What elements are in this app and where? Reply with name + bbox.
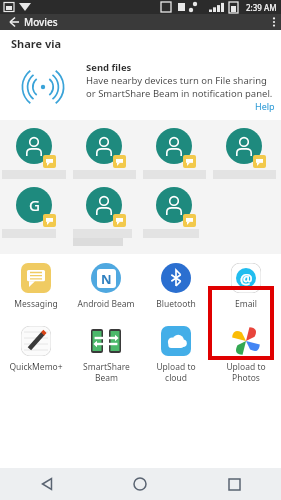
button[interactable]: Upload to cloud <box>141 322 211 385</box>
button[interactable]: Upload to Photos <box>211 322 281 385</box>
staticText: Email <box>235 298 257 310</box>
button[interactable]: Back <box>0 468 93 500</box>
staticText: Bluetooth <box>156 298 196 310</box>
staticText: Upload to cloud <box>156 361 196 383</box>
button[interactable]: G <box>0 183 71 238</box>
staticText: QuickMemo+ <box>9 361 63 373</box>
button[interactable] <box>141 183 211 238</box>
button[interactable]: Home <box>93 468 187 500</box>
button[interactable]: Messaging <box>0 259 71 312</box>
button[interactable]: Recent apps <box>187 468 281 500</box>
button[interactable] <box>211 124 281 179</box>
button[interactable]: @ <box>211 259 281 312</box>
button[interactable] <box>141 124 211 179</box>
staticText: Share via <box>11 36 62 51</box>
staticText: G <box>29 195 40 215</box>
staticText: 2:39 AM <box>246 2 277 13</box>
staticText: Upload to Photos <box>226 361 266 383</box>
staticText: @ <box>240 269 253 288</box>
button[interactable]: Bluetooth <box>141 259 211 312</box>
staticText: Send files <box>86 61 132 74</box>
button[interactable] <box>0 124 71 179</box>
staticText: N <box>101 270 112 288</box>
staticText: Movies <box>24 15 58 29</box>
button[interactable]: SmartShare Beam <box>71 322 141 385</box>
button[interactable] <box>71 124 141 179</box>
button[interactable] <box>71 183 141 246</box>
button[interactable]: QuickMemo+ <box>0 322 71 375</box>
button[interactable]: N <box>71 259 141 312</box>
staticText: Android Beam <box>77 298 135 310</box>
button[interactable]: Help <box>255 100 275 112</box>
staticText: Messaging <box>14 298 58 310</box>
staticText: SmartShare Beam <box>83 361 130 383</box>
staticText: Have nearby devices turn on File sharing… <box>86 74 275 100</box>
button[interactable]: Back <box>6 14 22 30</box>
button[interactable]: More options <box>267 14 281 30</box>
